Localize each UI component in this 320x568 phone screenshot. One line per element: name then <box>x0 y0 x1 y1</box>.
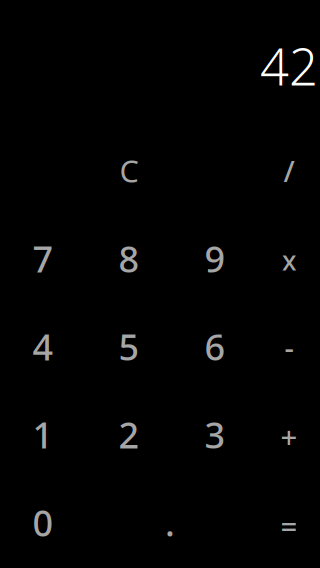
staticText: C <box>119 150 138 191</box>
button[interactable]: 4 <box>0 303 86 391</box>
staticText: 42 <box>260 32 318 99</box>
staticText: 7 <box>32 235 53 282</box>
staticText: x <box>282 242 296 278</box>
button[interactable]: 9 <box>172 215 258 303</box>
staticText: 5 <box>118 323 139 370</box>
button[interactable]: Subtract <box>258 303 320 391</box>
button[interactable]: 2 <box>86 391 172 479</box>
button[interactable]: Add <box>258 391 320 479</box>
staticText: . <box>165 499 175 546</box>
button[interactable]: Clear <box>0 127 258 215</box>
staticText: 0 <box>32 499 53 546</box>
staticText: 8 <box>118 235 139 282</box>
button[interactable]: 6 <box>172 303 258 391</box>
button[interactable]: Equals <box>258 479 320 567</box>
button[interactable]: 8 <box>86 215 172 303</box>
staticText: 4 <box>32 323 53 370</box>
staticText: 6 <box>204 323 225 370</box>
staticText: - <box>284 327 293 366</box>
staticText: + <box>280 417 297 456</box>
button[interactable]: 0 <box>0 479 86 567</box>
staticText: / <box>283 151 294 190</box>
button[interactable]: Decimal point <box>86 479 258 567</box>
staticText: = <box>280 506 297 545</box>
button[interactable]: Divide <box>258 127 320 215</box>
button[interactable]: Multiply <box>258 215 320 303</box>
button[interactable]: 1 <box>0 391 86 479</box>
staticText: 2 <box>118 411 139 458</box>
button[interactable]: 7 <box>0 215 86 303</box>
staticText: 9 <box>204 235 225 282</box>
button[interactable]: 5 <box>86 303 172 391</box>
staticText: 1 <box>32 411 53 458</box>
button[interactable]: 3 <box>172 391 258 479</box>
staticText: 3 <box>204 411 225 458</box>
